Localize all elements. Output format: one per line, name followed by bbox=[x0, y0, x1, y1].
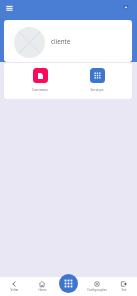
staticText: Configurações bbox=[87, 288, 107, 292]
staticText: Voltar bbox=[10, 288, 19, 292]
staticText: Home bbox=[38, 288, 47, 292]
staticText: Serviços bbox=[86, 87, 108, 92]
staticText: cliente bbox=[51, 37, 71, 45]
button[interactable]: Home bbox=[28, 277, 56, 296]
button[interactable]: Voltar bbox=[0, 277, 28, 296]
button[interactable]: Contratos bbox=[29, 68, 51, 92]
button[interactable]: Menu bbox=[3, 2, 16, 15]
button[interactable]: Sair bbox=[110, 277, 137, 296]
staticText: Contratos bbox=[29, 87, 51, 92]
button[interactable]: Configurações bbox=[83, 277, 110, 296]
button[interactable]: Account bbox=[121, 2, 132, 13]
staticText: Sair bbox=[121, 288, 127, 292]
button[interactable]: Apps bbox=[59, 274, 78, 293]
button[interactable]: cliente bbox=[4, 20, 132, 62]
button[interactable]: Serviços bbox=[86, 68, 108, 92]
